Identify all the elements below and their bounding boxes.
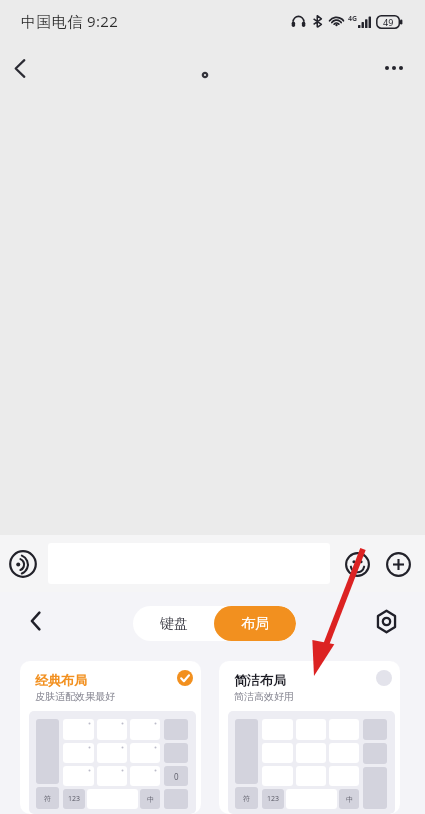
button[interactable]: 布局	[214, 606, 296, 641]
button[interactable]: Add	[381, 547, 415, 581]
button[interactable]: 经典布局	[20, 661, 201, 814]
button[interactable]: Settings	[371, 606, 401, 636]
staticText: 中国电信 9:22	[21, 11, 119, 31]
button[interactable]: 键盘	[133, 606, 214, 641]
staticText: 123	[68, 794, 81, 804]
staticText: 4G	[348, 14, 358, 24]
button[interactable]: 简洁布局	[219, 661, 400, 814]
button[interactable]: Back	[0, 48, 40, 88]
staticText: 经典布局	[35, 672, 87, 688]
button[interactable]: Voice input	[5, 546, 41, 582]
staticText: 符	[243, 794, 250, 803]
button[interactable]: Back	[18, 604, 52, 638]
staticText: 符	[44, 794, 51, 803]
staticText: 0	[174, 771, 179, 782]
button[interactable]: Emoji	[340, 547, 374, 581]
staticText: 键盘	[160, 615, 188, 633]
staticText: 123	[267, 794, 280, 804]
button[interactable]: More options	[374, 48, 414, 88]
staticText: 简洁布局	[234, 672, 286, 688]
staticText: 中	[147, 795, 154, 804]
staticText: 简洁高效好用	[234, 690, 294, 703]
staticText: 中	[346, 795, 353, 804]
staticText: 皮肤适配效果最好	[35, 690, 115, 703]
staticText: 布局	[241, 615, 269, 633]
staticText: 49	[383, 16, 394, 28]
